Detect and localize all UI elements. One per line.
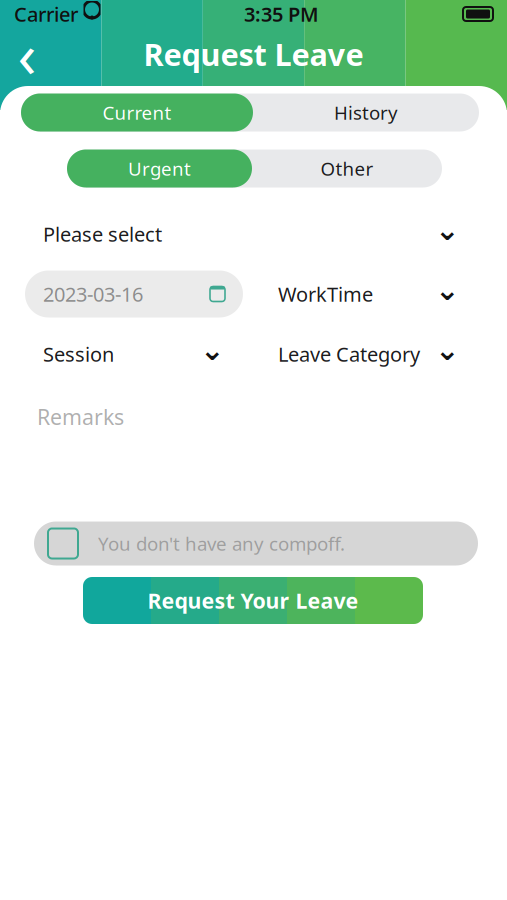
button[interactable]: Back (0, 28, 54, 80)
staticText: Remarks (37, 402, 124, 431)
staticText (77, 0, 83, 29)
staticText: ‹ (17, 13, 36, 95)
staticText: ⌄ (435, 213, 460, 246)
staticText: ⌄ (435, 333, 460, 366)
button[interactable]: WorkTime (260, 270, 478, 317)
staticText: Session (43, 341, 114, 367)
staticText: Request Leave (143, 34, 363, 74)
staticText: Current (102, 100, 171, 125)
button[interactable]: Remarks (25, 390, 490, 507)
button[interactable]: Current (21, 93, 253, 131)
staticText: WorkTime (278, 281, 373, 307)
staticText: Other (320, 156, 373, 181)
button[interactable]: Other (252, 149, 442, 187)
staticText: Urgent (128, 156, 191, 181)
staticText: Request Your Leave (147, 586, 358, 615)
button[interactable]: Request Your Leave (83, 577, 423, 624)
staticText: 2023-03-16 (43, 281, 143, 307)
staticText: ⌄ (200, 333, 225, 366)
staticText: You don't have any compoff. (98, 531, 345, 556)
staticText: History (334, 100, 398, 125)
button[interactable]: Leave Category (260, 330, 478, 377)
staticText: 3:35 PM (244, 1, 319, 27)
staticText: Leave Category (278, 341, 420, 367)
button[interactable]: You don't have any compoff. (34, 521, 478, 565)
button[interactable]: History (253, 93, 479, 131)
button[interactable]: Urgent (67, 149, 252, 187)
button[interactable]: Session (25, 330, 243, 377)
staticText: ⌄ (435, 273, 460, 306)
button[interactable]: Please select (25, 210, 478, 257)
staticText: Carrier (14, 1, 78, 27)
staticText: Please select (43, 221, 162, 247)
button[interactable]: Select date (25, 270, 243, 317)
